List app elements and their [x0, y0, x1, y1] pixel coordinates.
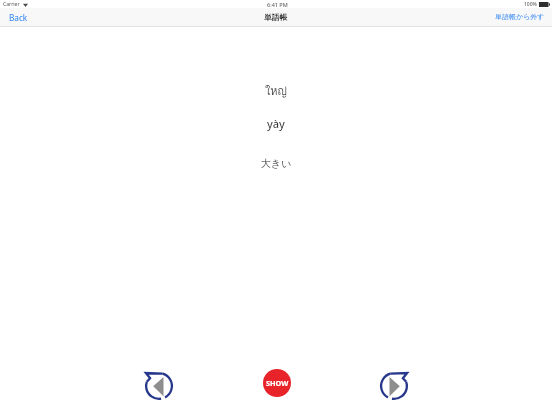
staticText: yày — [267, 116, 285, 131]
button[interactable]: 単語帳から外す — [495, 7, 545, 26]
staticText: 単語帳から外す — [495, 12, 545, 21]
staticText: Carrier — [3, 1, 20, 8]
staticText: 大きい — [261, 157, 292, 170]
staticText: 100% — [524, 1, 537, 8]
button[interactable]: Back — [9, 8, 28, 27]
staticText: SHOW — [266, 378, 289, 388]
button[interactable]: SHOW — [263, 369, 291, 397]
button[interactable]: Next card — [378, 370, 410, 402]
staticText: 6:41 PM — [267, 1, 288, 8]
button[interactable]: Previous card — [143, 370, 175, 402]
staticText: Back — [9, 12, 28, 23]
staticText: ใหญ่ — [265, 82, 287, 99]
staticText: 単語帳 — [264, 12, 288, 22]
